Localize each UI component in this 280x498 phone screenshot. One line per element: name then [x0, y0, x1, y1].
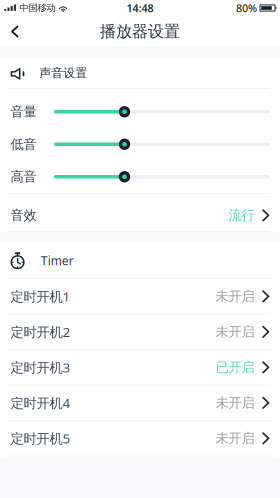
- staticText: 中国移动: [20, 2, 56, 14]
- button[interactable]: 定时开机2: [0, 314, 280, 350]
- staticText: 定时开机5: [10, 429, 70, 447]
- button[interactable]: 定时开机3: [0, 350, 280, 385]
- staticText: 音效: [10, 207, 36, 224]
- staticText: 声音设置: [39, 66, 87, 80]
- staticText: Timer: [41, 253, 74, 268]
- staticText: 高音: [10, 169, 36, 185]
- staticText: 80%: [236, 1, 257, 15]
- staticText: 定时开机2: [10, 323, 70, 341]
- staticText: 已开启: [216, 359, 255, 376]
- staticText: 14:48: [126, 1, 153, 15]
- staticText: 未开启: [216, 324, 255, 340]
- staticText: 播放器设置: [100, 22, 180, 41]
- staticText: 定时开机1: [10, 287, 70, 305]
- staticText: 流行: [229, 207, 255, 224]
- button[interactable]: 定时开机5: [0, 421, 280, 456]
- staticText: 低音: [10, 136, 36, 152]
- staticText: 定时开机3: [10, 358, 70, 376]
- button[interactable]: 定时开机4: [0, 385, 280, 421]
- button[interactable]: 定时开机1: [0, 279, 280, 314]
- staticText: 未开启: [216, 395, 255, 411]
- staticText: 定时开机4: [10, 394, 70, 412]
- staticText: 音量: [10, 104, 36, 120]
- button[interactable]: Back: [0, 16, 30, 47]
- staticText: 未开启: [216, 288, 255, 305]
- button[interactable]: 音效: [0, 199, 280, 232]
- staticText: 未开启: [216, 430, 255, 447]
